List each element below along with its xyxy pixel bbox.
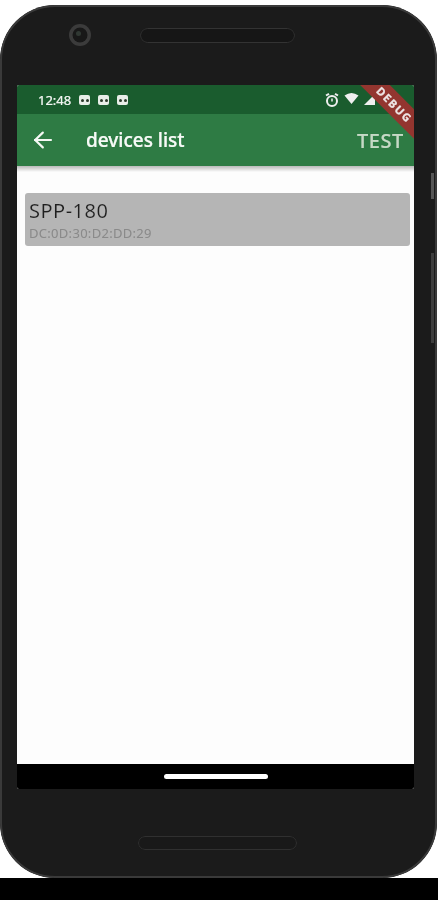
staticText: DC:0D:30:D2:DD:29 [29, 224, 152, 242]
button[interactable]: TEST [357, 127, 414, 154]
staticText: 12:48 [38, 91, 72, 109]
staticText: TEST [357, 127, 404, 154]
staticText: devices list [86, 127, 185, 153]
staticText: DEBUG [373, 85, 414, 126]
button[interactable] [17, 114, 69, 166]
staticText: SPP-180 [29, 197, 109, 224]
button[interactable]: SPP-180 [25, 193, 410, 246]
